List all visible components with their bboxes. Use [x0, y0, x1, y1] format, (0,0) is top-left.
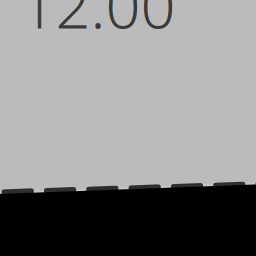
button[interactable]: 6	[0, 0, 256, 256]
staticText: 12.00	[20, 0, 175, 45]
button[interactable]: 2	[0, 0, 256, 256]
button[interactable]: 8	[0, 0, 256, 256]
button[interactable]: 4	[0, 0, 256, 256]
button[interactable]: 7	[0, 0, 256, 256]
button[interactable]: 5	[0, 0, 256, 256]
button[interactable]: 1	[0, 0, 256, 256]
button[interactable]: 9	[0, 0, 256, 256]
